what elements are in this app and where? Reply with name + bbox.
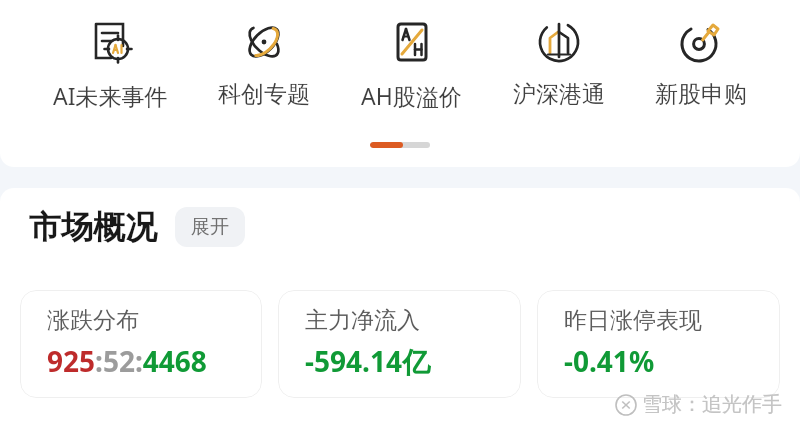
button[interactable]: 涨跌分布	[20, 290, 262, 398]
other: 新股申购	[675, 16, 727, 68]
staticText: 沪深港通	[513, 80, 605, 109]
staticText: -594.14亿	[305, 342, 430, 380]
staticText: 昨日涨停表现	[564, 306, 702, 335]
button[interactable]: AI未来事件	[47, 12, 174, 115]
button[interactable]: 展开	[175, 207, 245, 247]
staticText: 涨跌分布	[47, 306, 139, 335]
staticText: 科创专题	[218, 80, 310, 109]
other: AH股溢价	[386, 16, 438, 68]
other: AI未来事件	[85, 16, 137, 68]
button[interactable]: 昨日涨停表现	[537, 290, 780, 398]
staticText: 市场概况	[29, 207, 157, 247]
staticText: 雪球：追光作手	[642, 392, 782, 417]
button[interactable]: 主力净流入	[278, 290, 521, 398]
staticText: 展开	[191, 215, 229, 239]
staticText: -0.41%	[564, 342, 655, 380]
button[interactable]: 新股申购	[649, 12, 753, 113]
button[interactable]: AH股溢价	[355, 12, 468, 115]
button[interactable]: 科创专题	[212, 12, 316, 113]
staticText: 新股申购	[655, 80, 747, 109]
other: 沪深港通	[533, 16, 585, 68]
staticText: AH股溢价	[361, 80, 462, 111]
other: 科创专题	[238, 16, 290, 68]
staticText: 主力净流入	[305, 306, 420, 335]
staticText: 925:52:4468	[47, 342, 207, 380]
staticText: AI未来事件	[53, 80, 168, 111]
button[interactable]: 沪深港通	[507, 12, 611, 113]
